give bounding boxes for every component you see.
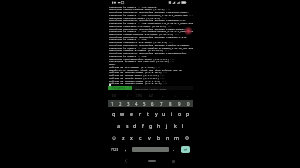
button[interactable]: Back [113,155,139,167]
staticText: Setting up libice6:arm64 (2:1.0.10-1) ..… [109,70,168,73]
staticText: g [149,122,153,129]
button[interactable]: t [144,108,152,119]
staticText: Unpacking libxi6:arm64 [135,87,167,90]
staticText: CTRL [136,94,143,98]
staticText: k [174,122,177,129]
staticText: Unpacking libpixman-1-0:arm64 (0.40.0-1)… [109,24,172,27]
staticText: w [120,110,125,117]
staticText: Selecting previously unselected package … [109,18,187,21]
button[interactable]: i [168,108,176,119]
button[interactable]: j [163,120,171,131]
button[interactable]: q [109,108,118,119]
button[interactable]: c [136,132,145,143]
staticText: Selecting previously unselected package … [109,35,188,38]
button[interactable]: 9 [175,100,184,107]
button[interactable]: z [119,132,127,143]
button[interactable]: 0 [184,100,193,107]
button[interactable]: a [114,120,123,131]
button[interactable]: . [171,143,177,155]
staticText: p [186,110,190,117]
button[interactable]: CTRL [133,92,145,100]
staticText: Unpacking libxcb-render0:arm64 (1.14-3) … [109,7,171,10]
button[interactable]: k [171,120,179,131]
staticText: t [147,110,149,117]
button[interactable]: s [123,120,131,131]
staticText: Selecting previously unselected package … [109,27,187,30]
staticText: z [122,134,125,141]
staticText: 4 [135,101,138,107]
staticText: q [112,110,116,117]
button[interactable]: f [139,120,147,131]
button[interactable]: u [160,108,168,119]
staticText: l [182,122,184,129]
button[interactable]: Recent apps [162,155,185,167]
button[interactable]: h [155,120,163,131]
button[interactable]: w [118,108,127,119]
staticText: 9 [178,101,181,107]
button[interactable]: x [127,132,136,143]
button[interactable]: r [136,108,144,119]
staticText: u [162,110,166,117]
staticText: Unpacking libpango-1.0-0:arm64 (1.46.2-3… [109,40,174,43]
button[interactable]: b [154,132,163,143]
button[interactable]: 8 [166,100,175,107]
button[interactable]: g [147,120,155,131]
button[interactable]: 4 [132,100,140,107]
staticText: y [155,110,158,117]
button[interactable]: v [145,132,154,143]
button[interactable]: ALT [145,92,157,100]
staticText: 0 [187,101,190,107]
button[interactable]: Backspace [181,132,192,143]
staticText: Preparing to unpack .../24-libxcomposite… [109,54,194,57]
staticText: done. [109,62,117,65]
staticText: Setting up libsm6:arm64 (2:1.2.3-1) ... [109,73,165,76]
staticText: Processing triggers for libc-bin (2.31-1… [109,59,175,62]
staticText: Selecting previously unselected package … [109,43,191,46]
staticText: h [157,122,161,129]
button[interactable]: 6 [148,100,157,107]
staticText: e [130,110,133,117]
button[interactable]: 3 [124,100,132,107]
staticText: Setting up libxaw7:arm64 (2:1.0.14-1) ..… [109,81,168,84]
staticText: ?123 [111,147,119,151]
staticText: → [186,95,189,98]
button[interactable]: , [123,143,129,155]
staticText: x [130,134,133,141]
button[interactable]: Shift [109,132,119,143]
staticText: Unpacking libxcomposite1:arm64 (1:0.4.5-… [109,57,175,60]
button[interactable]: m [172,132,181,143]
staticText: f [142,122,144,129]
staticText: Progress: [ 43%] [112,86,139,90]
staticText: v [148,134,151,141]
staticText: ALT [149,94,154,98]
button[interactable]: Space [132,147,169,152]
staticText: Unpacking libcairo2:arm64 (1.16.0-5) ... [109,16,167,19]
staticText: / [127,94,128,98]
button[interactable]: ESC [108,92,121,100]
button[interactable]: ?123 [109,143,121,155]
staticText: update-rc.d: warning: start and stop act… [109,68,182,71]
button[interactable]: 1 [108,100,116,107]
button[interactable]: e [127,108,136,119]
staticText: ← [162,95,165,98]
button[interactable]: y [152,108,160,119]
button[interactable]: d [131,120,139,131]
staticText: . [173,146,175,152]
button[interactable]: p [184,108,192,119]
button[interactable]: Home [139,155,164,167]
button[interactable]: 2 [116,100,124,107]
button[interactable]: 7 [157,100,166,107]
staticText: 1 [111,101,114,107]
staticText: Preparing to unpack .../22-libpango-1.0-… [109,37,194,40]
button[interactable]: Enter [181,146,190,153]
staticText: m [174,134,179,141]
button[interactable]: l [179,120,187,131]
button[interactable]: 5 [140,100,148,107]
button[interactable]: n [163,132,172,143]
staticText: Unpacking libgdk-pixbuf2.0-0:arm64 (2.42… [109,32,179,35]
button[interactable]: o [176,108,184,119]
